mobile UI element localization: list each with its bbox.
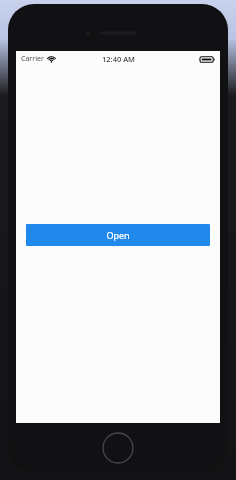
button[interactable]: Open — [26, 224, 210, 246]
button[interactable]: Home — [102, 432, 134, 464]
staticText: 12:40 AM — [102, 54, 135, 64]
staticText: Carrier — [21, 54, 44, 64]
staticText: Open — [106, 229, 130, 241]
